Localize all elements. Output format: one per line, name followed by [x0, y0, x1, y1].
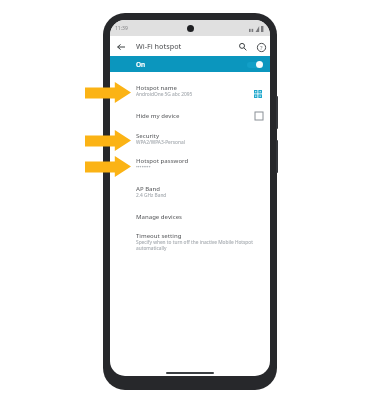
staticText: ?: [260, 44, 263, 52]
button[interactable]: Hotspot password: [110, 155, 270, 183]
button[interactable]: Timeout setting: [110, 230, 270, 260]
button[interactable]: Hotspot name: [110, 82, 270, 110]
button[interactable]: On: [110, 56, 270, 72]
staticText: 11:39: [115, 25, 128, 32]
staticText: Hide my device: [136, 112, 258, 120]
staticText: Hotspot password: [136, 157, 258, 165]
button[interactable]: Hide my device: [110, 110, 270, 129]
button[interactable]: Manage devices: [110, 211, 270, 230]
staticText: WPA2/WPA3-Personal: [136, 139, 258, 146]
staticText: 2.4 GHz Band: [136, 192, 258, 199]
staticText: Security: [136, 132, 258, 140]
button[interactable]: Security: [110, 130, 270, 156]
staticText: Specify when to turn off the inactive Mo…: [136, 239, 258, 251]
button[interactable]: Help: [253, 39, 269, 55]
button[interactable]: AP Band: [110, 183, 270, 211]
staticText: Timeout setting: [136, 232, 258, 240]
staticText: Wi-Fi hotspot: [136, 41, 182, 51]
button[interactable]: Back: [113, 39, 129, 55]
staticText: On: [136, 60, 146, 69]
staticText: Manage devices: [136, 213, 258, 221]
staticText: AndroidOne 5G abc 2095: [136, 91, 258, 98]
staticText: ••••••••: [136, 164, 258, 171]
button[interactable]: Search: [235, 39, 251, 55]
staticText: Hotspot name: [136, 84, 258, 92]
staticText: AP Band: [136, 185, 258, 193]
